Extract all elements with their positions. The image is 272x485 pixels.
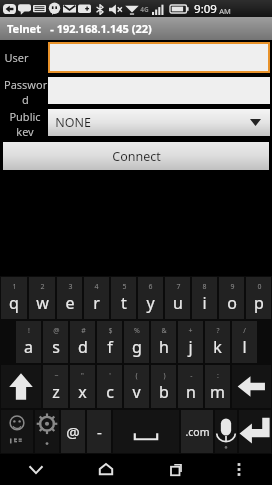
button[interactable]: ~ xyxy=(43,365,68,408)
staticText: s xyxy=(52,336,60,358)
staticText: c xyxy=(106,381,114,403)
staticText: Telnet xyxy=(7,21,41,36)
staticText: - xyxy=(97,422,102,442)
staticText: v xyxy=(132,381,141,403)
staticText: t xyxy=(121,292,127,314)
button[interactable]: More options xyxy=(222,454,256,485)
staticText: 7 xyxy=(176,282,181,292)
staticText: ~ xyxy=(54,371,59,381)
staticText: ( xyxy=(135,371,138,381)
button[interactable]: 2 xyxy=(29,277,55,319)
staticText: r xyxy=(93,292,100,314)
staticText: m xyxy=(210,381,225,403)
button[interactable]: ! xyxy=(16,321,41,363)
button[interactable]: 4 xyxy=(84,277,109,319)
button[interactable]: Enter xyxy=(239,410,271,453)
button[interactable]: 7 xyxy=(165,277,190,319)
button[interactable]: .com xyxy=(181,410,213,453)
staticText: - 192.168.1.145 (22) xyxy=(50,21,152,36)
staticText: $ xyxy=(108,326,113,336)
button[interactable]: 1 xyxy=(1,277,27,319)
staticText: 2 xyxy=(40,282,45,292)
button[interactable]: ' xyxy=(97,365,122,408)
button[interactable]: $ xyxy=(97,321,122,363)
staticText: 0 xyxy=(257,282,262,292)
staticText: a xyxy=(24,336,33,358)
staticText: g xyxy=(132,336,142,358)
button[interactable]: Home xyxy=(89,454,123,485)
staticText: - xyxy=(190,371,193,381)
button[interactable]: Backspace xyxy=(232,365,271,408)
button[interactable]: Recents xyxy=(159,454,193,485)
button[interactable]: @ xyxy=(61,410,85,453)
staticText: y xyxy=(146,292,155,314)
staticText: l xyxy=(242,336,247,358)
button[interactable]: # xyxy=(70,321,95,363)
staticText: / xyxy=(243,326,246,336)
staticText: ' xyxy=(109,371,111,381)
button[interactable]: % xyxy=(124,321,149,363)
button[interactable]: ( xyxy=(124,365,149,408)
button[interactable]: & xyxy=(151,321,176,363)
button[interactable]: Space xyxy=(113,410,179,453)
button[interactable]: - xyxy=(178,365,203,408)
staticText: k xyxy=(213,336,222,358)
button[interactable]: 5 xyxy=(111,277,136,319)
button[interactable]: 0 xyxy=(246,277,271,319)
button[interactable]: ? xyxy=(205,321,230,363)
staticText: f xyxy=(107,336,113,358)
staticText: h xyxy=(159,336,169,358)
button[interactable]: NONE xyxy=(48,109,270,136)
button[interactable]: Symbols xyxy=(1,410,33,453)
button[interactable]: + xyxy=(178,321,203,363)
staticText: ? xyxy=(216,326,220,336)
staticText: 1 xyxy=(12,282,17,292)
staticText: ! xyxy=(28,326,30,336)
staticText: @ xyxy=(66,422,80,442)
staticText: o xyxy=(227,292,237,314)
button[interactable]: 3 xyxy=(57,277,82,319)
button[interactable]: / xyxy=(232,321,257,363)
staticText: AM xyxy=(219,6,231,16)
staticText: NONE xyxy=(55,114,91,131)
staticText: " xyxy=(81,371,84,381)
staticText: % xyxy=(134,326,140,336)
staticText: w xyxy=(36,292,49,314)
staticText: e xyxy=(65,292,75,314)
staticText: & xyxy=(161,326,167,336)
staticText: 9 xyxy=(230,282,235,292)
button[interactable]: @ xyxy=(43,321,68,363)
staticText: u xyxy=(173,292,183,314)
button[interactable]: Connect xyxy=(3,142,269,170)
staticText: x xyxy=(78,381,87,403)
staticText: i xyxy=(202,292,207,314)
button[interactable]: ) xyxy=(151,365,176,408)
button[interactable]: " xyxy=(70,365,95,408)
staticText: q xyxy=(9,292,19,314)
staticText: d xyxy=(78,336,88,358)
staticText: Public key xyxy=(2,109,48,136)
staticText: z xyxy=(52,381,60,403)
staticText: 9:09 xyxy=(194,1,217,17)
staticText: b xyxy=(159,381,169,403)
staticText: @ xyxy=(53,326,60,336)
staticText: : xyxy=(217,371,219,381)
staticText: User xyxy=(4,50,29,65)
staticText: 4 xyxy=(94,282,99,292)
button[interactable]: Settings xyxy=(35,410,59,453)
button[interactable]: Shift xyxy=(1,365,41,408)
button[interactable]: : xyxy=(205,365,230,408)
staticText: Password xyxy=(3,77,48,104)
button[interactable]: 8 xyxy=(192,277,217,319)
staticText: 3 xyxy=(68,282,73,292)
staticText: ) xyxy=(163,371,166,381)
staticText: 8 xyxy=(202,282,207,292)
button[interactable]: Voice input xyxy=(215,410,237,453)
button[interactable]: 6 xyxy=(138,277,163,319)
staticText: 4G xyxy=(140,5,149,14)
button[interactable]: - xyxy=(87,410,111,453)
button[interactable]: Back xyxy=(19,454,53,485)
button[interactable]: 9 xyxy=(219,277,244,319)
